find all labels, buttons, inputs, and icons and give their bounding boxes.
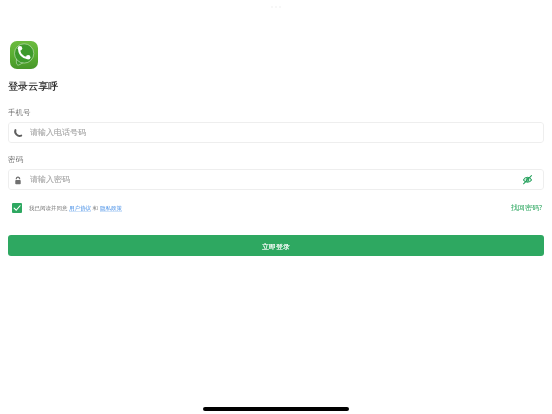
staticText: 请输入密码: [30, 174, 70, 184]
button[interactable]: 找回密码?: [511, 203, 544, 213]
button[interactable]: 请输入密码: [8, 169, 544, 190]
staticText: 密码: [8, 155, 23, 164]
staticText: 登录云享呼: [8, 80, 58, 93]
button[interactable]: 请输入电话号码: [8, 122, 544, 143]
staticText: 用户协议: [69, 205, 91, 212]
staticText: 手机号: [8, 108, 31, 117]
staticText: 我已阅读并同意: [29, 204, 69, 212]
button[interactable]: 立即登录: [8, 235, 544, 256]
staticText: 立即登录: [262, 242, 290, 251]
staticText: 隐私政策: [100, 205, 122, 212]
staticText: 找回密码?: [511, 203, 543, 213]
button[interactable]: Show password: [521, 173, 534, 186]
button[interactable]: 我已阅读并同意: [8, 203, 122, 213]
staticText: 请输入电话号码: [30, 127, 86, 137]
staticText: 和: [91, 204, 100, 212]
